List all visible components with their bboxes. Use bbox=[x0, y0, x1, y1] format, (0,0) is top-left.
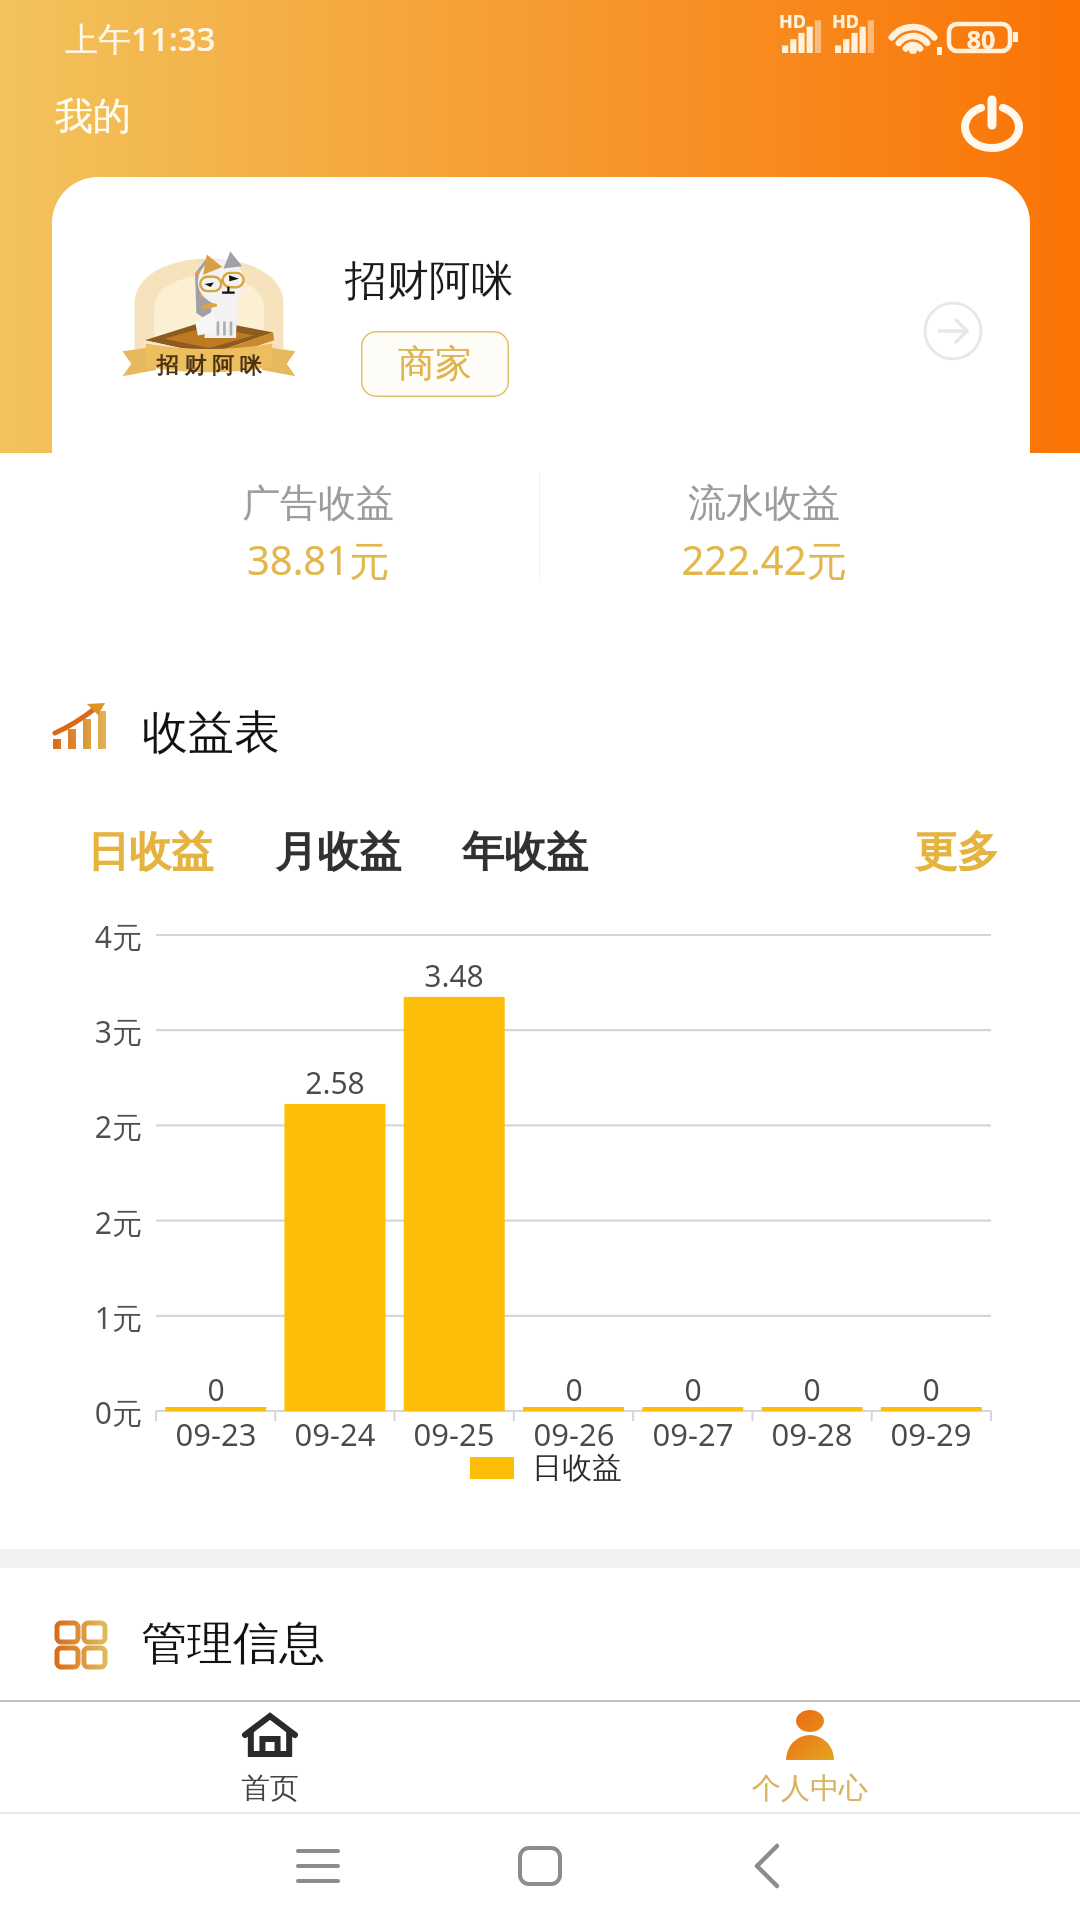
staticText: 09-26 bbox=[504, 1413, 644, 1455]
staticText: 更多 bbox=[915, 826, 999, 879]
staticText: 09-23 bbox=[146, 1413, 286, 1455]
staticText: 流水收益 bbox=[594, 479, 934, 527]
button[interactable]: 广告收益 bbox=[148, 479, 488, 587]
staticText: 222.42元 bbox=[594, 532, 934, 587]
staticText: 2元 bbox=[52, 1202, 142, 1243]
staticText: 0 bbox=[156, 1369, 276, 1410]
button[interactable]: 首页 bbox=[0, 1702, 540, 1814]
staticText: 09-25 bbox=[384, 1413, 524, 1455]
staticText: 38.81元 bbox=[148, 532, 488, 587]
button[interactable]: 个人中心 bbox=[540, 1702, 1080, 1814]
staticText: 3元 bbox=[52, 1011, 142, 1052]
staticText: HD bbox=[832, 9, 859, 34]
staticText: 日收益 bbox=[532, 1449, 622, 1487]
staticText: 月收益 bbox=[275, 826, 401, 879]
staticText: 0元 bbox=[52, 1392, 142, 1433]
staticText: 09-29 bbox=[861, 1413, 1001, 1455]
staticText: 0 bbox=[871, 1369, 991, 1410]
staticText: 0 bbox=[752, 1369, 872, 1410]
staticText: 年收益 bbox=[462, 826, 588, 879]
button[interactable]: 商家 bbox=[361, 331, 509, 397]
button[interactable]: Recent apps bbox=[258, 1814, 378, 1920]
staticText: 09-27 bbox=[623, 1413, 763, 1455]
staticText: 09-28 bbox=[742, 1413, 882, 1455]
staticText: 日收益 bbox=[87, 826, 213, 879]
staticText: 80 bbox=[962, 22, 1000, 56]
button[interactable]: Open account detail bbox=[923, 301, 983, 361]
button[interactable]: 更多 bbox=[892, 819, 1022, 885]
button[interactable]: 招 财 阿 咪 bbox=[52, 177, 1030, 613]
button[interactable]: Power off bbox=[947, 76, 1037, 166]
staticText: 0 bbox=[633, 1369, 753, 1410]
staticText: 管理信息 bbox=[141, 1615, 325, 1673]
staticText: 招财阿咪 bbox=[345, 255, 513, 308]
staticText: 招 财 阿 咪 bbox=[116, 349, 302, 379]
staticText: 我的 bbox=[55, 92, 131, 140]
staticText: 09-24 bbox=[265, 1413, 405, 1455]
staticText: 商家 bbox=[398, 340, 472, 387]
button[interactable]: 月收益 bbox=[253, 819, 423, 885]
staticText: 广告收益 bbox=[148, 479, 488, 527]
staticText: 首页 bbox=[241, 1770, 299, 1807]
staticText: 0 bbox=[514, 1369, 634, 1410]
staticText: 2元 bbox=[52, 1106, 142, 1147]
staticText: HD bbox=[779, 9, 806, 34]
staticText: 1元 bbox=[52, 1297, 142, 1338]
button[interactable]: 年收益 bbox=[440, 819, 610, 885]
staticText: 4元 bbox=[52, 916, 142, 957]
button[interactable]: Home bbox=[480, 1814, 600, 1920]
staticText: 个人中心 bbox=[752, 1770, 868, 1807]
staticText: 2.58 bbox=[275, 1062, 395, 1103]
staticText: 收益表 bbox=[142, 704, 280, 762]
button[interactable]: 流水收益 bbox=[594, 479, 934, 587]
staticText: 3.48 bbox=[394, 955, 514, 996]
button[interactable]: 日收益 bbox=[65, 819, 235, 885]
staticText: 上午11:33 bbox=[65, 16, 216, 61]
button[interactable]: 管理信息 bbox=[0, 1588, 1080, 1700]
button[interactable]: Back bbox=[708, 1814, 828, 1920]
